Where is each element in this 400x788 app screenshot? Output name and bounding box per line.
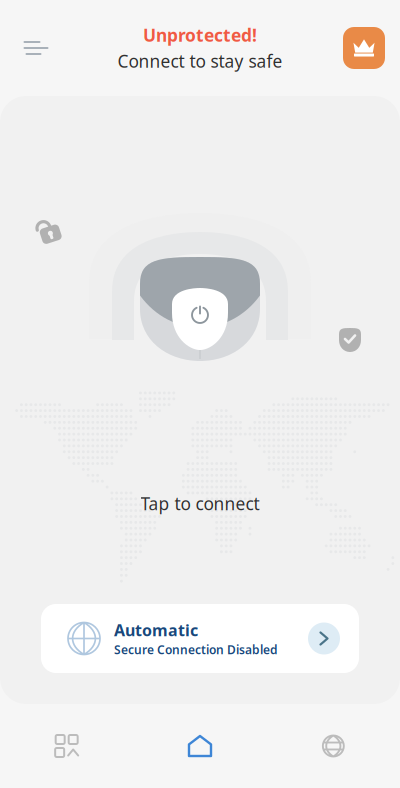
staticText: Secure Connection Disabled xyxy=(114,642,278,658)
button[interactable]: Automatic xyxy=(41,604,359,673)
button[interactable]: Menu xyxy=(12,18,60,78)
button[interactable]: Servers xyxy=(267,716,400,776)
button[interactable]: Premium xyxy=(340,18,388,78)
staticText: Unprotected! xyxy=(143,23,257,46)
staticText: Automatic xyxy=(114,619,198,641)
button[interactable]: Home xyxy=(133,716,267,776)
button[interactable]: Apps xyxy=(0,716,133,776)
staticText: Connect to stay safe xyxy=(117,49,282,72)
staticText: Tap to connect xyxy=(140,492,259,515)
